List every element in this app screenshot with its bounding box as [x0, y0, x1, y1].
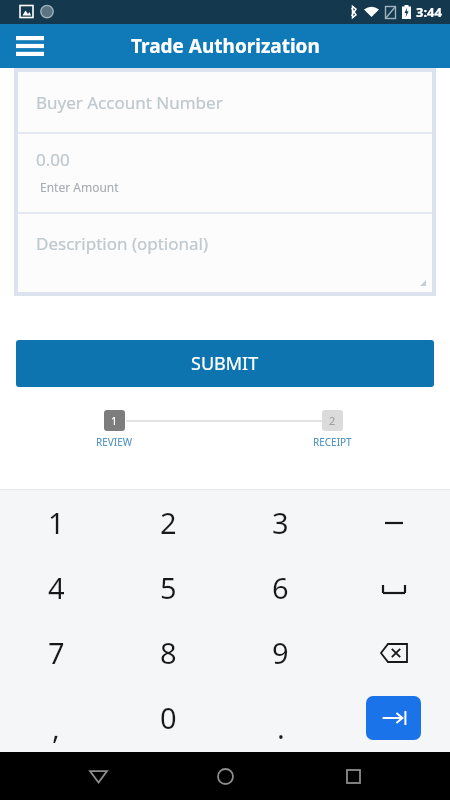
staticText: 0: [160, 698, 177, 737]
staticText: ,: [52, 708, 60, 747]
staticText: 7: [48, 633, 65, 672]
button[interactable]: 0: [112, 685, 224, 750]
button[interactable]: Recent apps: [323, 752, 383, 800]
button[interactable]: 6: [224, 555, 337, 620]
button[interactable]: 2: [313, 410, 352, 449]
staticText: 1: [111, 413, 118, 428]
staticText: Buyer Account Number: [36, 91, 223, 114]
staticText: .: [277, 708, 285, 747]
button[interactable]: 0.00: [18, 134, 432, 212]
staticText: 6: [272, 568, 289, 607]
staticText: Enter Amount: [40, 179, 119, 195]
staticText: Description (optional): [36, 232, 209, 255]
staticText: SUBMIT: [191, 351, 259, 376]
staticText: REVIEW: [96, 435, 133, 449]
staticText: 0.00: [36, 148, 70, 171]
button[interactable]: 7: [0, 620, 112, 685]
staticText: 5: [160, 568, 177, 607]
button[interactable]: ,: [0, 685, 112, 750]
button[interactable]: .: [224, 685, 337, 750]
button[interactable]: 3: [224, 490, 337, 555]
staticText: 8: [160, 633, 177, 672]
staticText: 9: [272, 633, 289, 672]
staticText: 3: [272, 503, 289, 542]
button[interactable]: 1: [0, 490, 112, 555]
button[interactable]: 4: [0, 555, 112, 620]
staticText: 1: [48, 503, 65, 542]
button[interactable]: Description (optional): [18, 214, 432, 292]
staticText: 2: [160, 503, 177, 542]
button[interactable]: Open navigation menu: [8, 24, 52, 68]
button[interactable]: Buyer Account Number: [18, 72, 432, 132]
button[interactable]: Home: [195, 752, 255, 800]
button[interactable]: Enter: [366, 696, 421, 740]
button[interactable]: Backspace: [337, 620, 450, 685]
button[interactable]: 5: [112, 555, 224, 620]
button[interactable]: Back: [68, 752, 128, 800]
button[interactable]: 9: [224, 620, 337, 685]
button[interactable]: 2: [112, 490, 224, 555]
button[interactable]: Space: [337, 555, 450, 620]
button[interactable]: SUBMIT: [16, 340, 434, 387]
staticText: 3:44: [416, 3, 442, 21]
staticText: 4: [48, 568, 65, 607]
button[interactable]: Minus: [337, 490, 450, 555]
staticText: Trade Authorization: [131, 33, 320, 59]
staticText: 2: [329, 413, 336, 428]
button[interactable]: 1: [96, 410, 133, 449]
staticText: RECEIPT: [313, 435, 352, 449]
button[interactable]: 8: [112, 620, 224, 685]
